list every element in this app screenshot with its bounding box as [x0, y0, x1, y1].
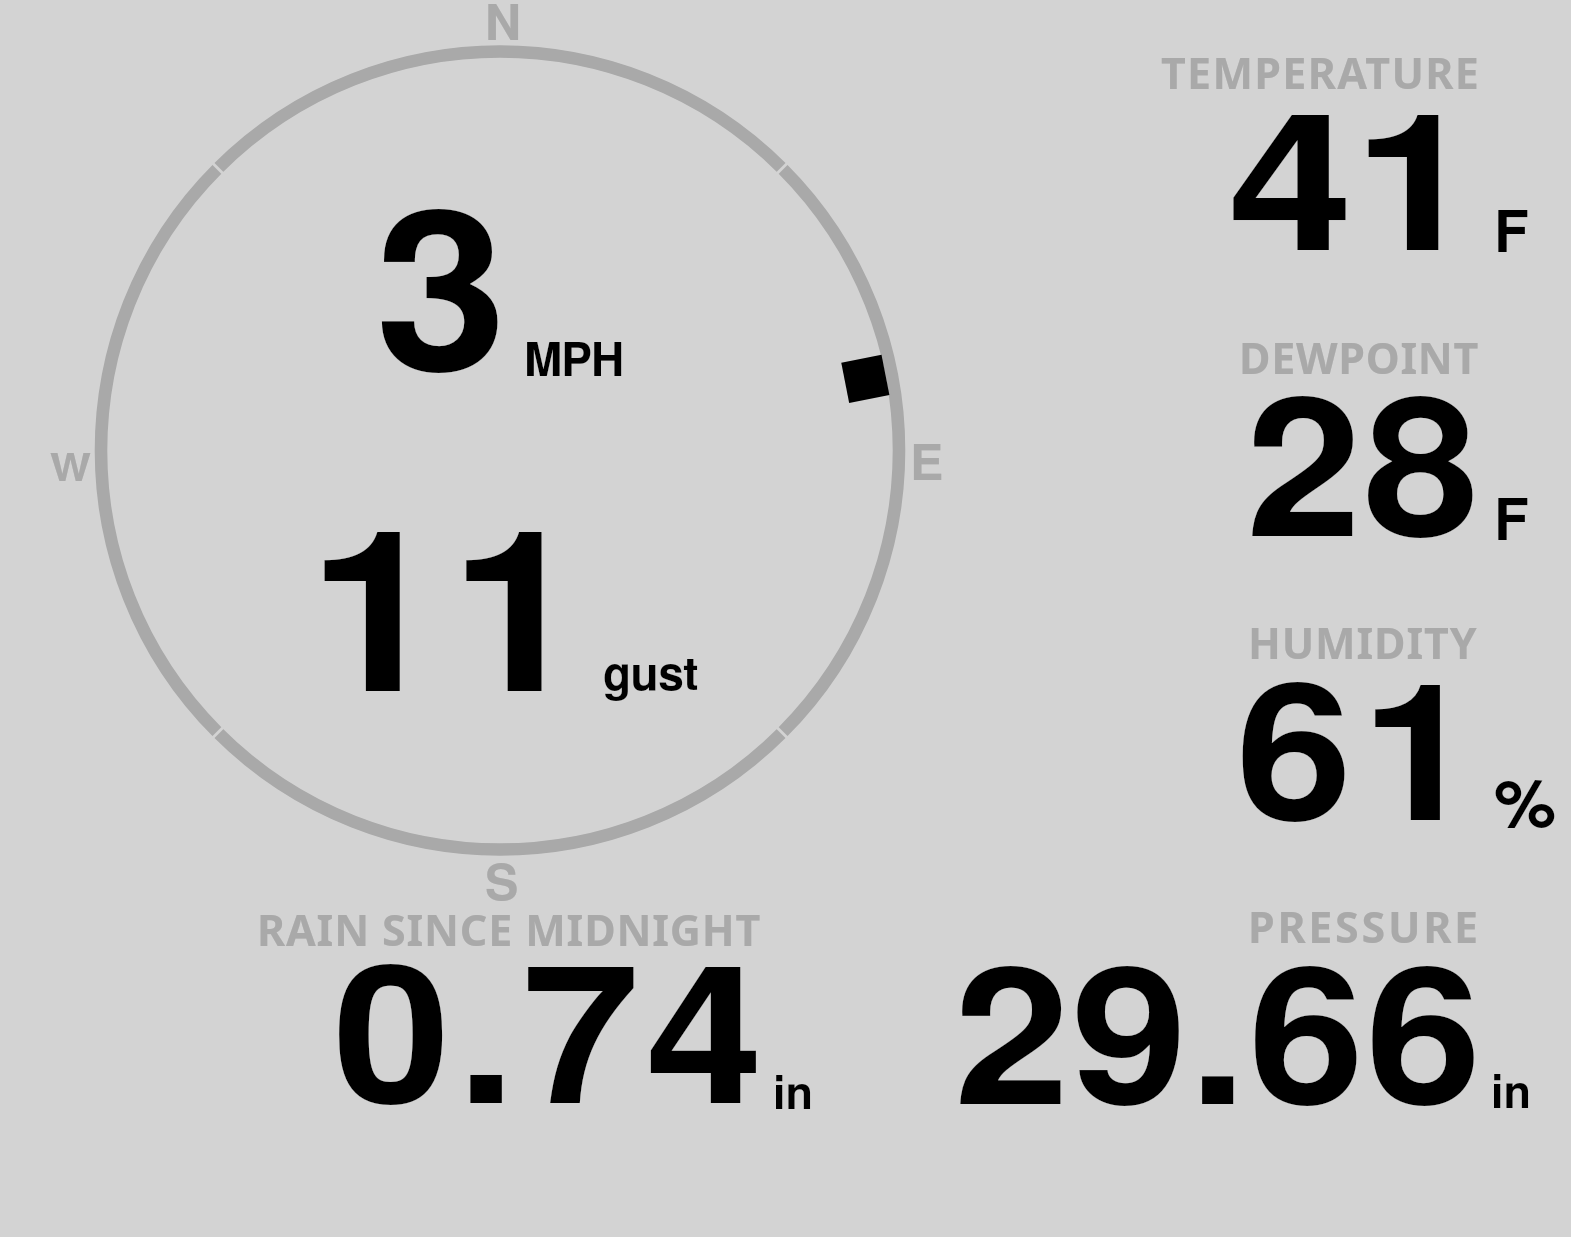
- staticText: TEMPERATURE: [1161, 43, 1481, 102]
- staticText: N: [485, 0, 522, 56]
- staticText: 11: [308, 439, 592, 760]
- staticText: %: [1494, 753, 1556, 848]
- staticText: E: [910, 424, 944, 496]
- staticText: 3: [375, 119, 507, 440]
- staticText: 61: [1236, 606, 1487, 878]
- staticText: gust: [603, 638, 699, 704]
- staticText: F: [1494, 476, 1529, 558]
- staticText: S: [485, 844, 519, 916]
- staticText: PRESSURE: [1248, 897, 1481, 956]
- button[interactable]: Rain since midnight 0.74 inches: [240, 895, 840, 1125]
- staticText: in: [773, 1058, 814, 1122]
- button[interactable]: Dewpoint 28 degrees Fahrenheit: [1140, 325, 1560, 555]
- staticText: 28: [1246, 319, 1481, 595]
- staticText: HUMIDITY: [1248, 613, 1478, 672]
- button[interactable]: Wind speed 3 miles per hour, gusting 11,…: [96, 46, 904, 854]
- button[interactable]: Humidity 61 percent: [1140, 610, 1560, 840]
- staticText: 29.66: [954, 890, 1484, 1162]
- staticText: F: [1494, 188, 1529, 270]
- staticText: W: [50, 438, 91, 492]
- staticText: 41: [1228, 36, 1479, 308]
- staticText: MPH: [524, 324, 624, 390]
- staticText: in: [1491, 1057, 1532, 1121]
- button[interactable]: Temperature 41 degrees Fahrenheit: [1140, 40, 1560, 270]
- button[interactable]: Pressure 29.66 inches: [930, 895, 1550, 1125]
- staticText: RAIN SINCE MIDNIGHT: [257, 900, 762, 959]
- staticText: 0.74: [333, 887, 770, 1162]
- staticText: DEWPOINT: [1239, 328, 1480, 387]
